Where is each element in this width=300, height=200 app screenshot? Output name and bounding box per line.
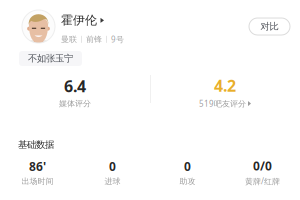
staticText: 进球 [104, 176, 120, 186]
staticText: 对比 [260, 21, 278, 32]
staticText: 助攻 [179, 176, 195, 186]
staticText: 9号 [111, 34, 124, 45]
staticText: 黄牌/红牌 [245, 176, 280, 186]
staticText: 媒体评分 [59, 99, 91, 108]
button[interactable]: 对比 [249, 18, 290, 35]
staticText: 出场时间 [21, 176, 53, 186]
staticText: 4.2 [214, 75, 236, 96]
staticText: 6.4 [64, 75, 86, 97]
staticText: 曼联 [61, 34, 77, 44]
staticText: 0 [109, 158, 116, 174]
staticText: 86' [29, 158, 46, 174]
button[interactable]: 霍伊伦 [61, 13, 104, 28]
staticText: 0 [184, 158, 191, 174]
staticText: 霍伊伦 [61, 13, 97, 28]
button[interactable]: 4.2 [150, 75, 300, 109]
button[interactable]: 不如张玉宁 [19, 51, 82, 66]
staticText: 519吧友评分 [199, 98, 246, 109]
staticText: 基础数据 [18, 139, 54, 150]
staticText: 前锋 [86, 34, 102, 44]
staticText: 0/0 [253, 158, 272, 174]
staticText: 不如张玉宁 [28, 53, 73, 64]
